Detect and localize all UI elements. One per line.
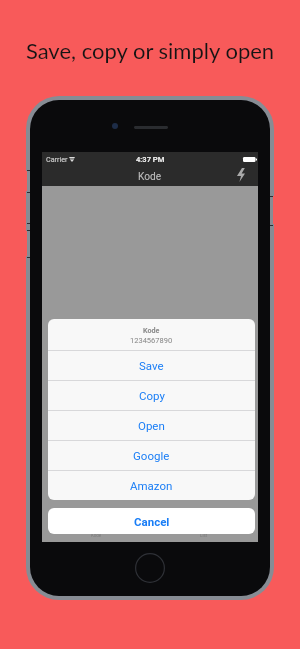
staticText: Save, copy or simply open <box>0 37 300 63</box>
staticText: Amazon <box>130 479 173 492</box>
staticText: Carrier <box>46 155 68 163</box>
staticText: Kode <box>138 171 162 183</box>
staticText: 4:37 PM <box>136 155 165 164</box>
staticText: Kode <box>91 533 102 538</box>
staticText: Save <box>139 359 164 372</box>
staticText: Open <box>138 419 165 432</box>
staticText: Kode <box>143 326 160 334</box>
button[interactable]: Cancel <box>48 508 255 534</box>
staticText: Google <box>133 449 170 462</box>
button[interactable]: Flash <box>232 164 252 186</box>
staticText: Copy <box>139 389 165 402</box>
button[interactable]: Google <box>48 441 255 470</box>
button[interactable]: Save <box>48 351 255 380</box>
button[interactable]: Amazon <box>48 471 255 500</box>
staticText: Cancel <box>134 515 170 528</box>
button[interactable]: Open <box>48 411 255 440</box>
staticText: List <box>200 533 208 538</box>
button[interactable]: Copy <box>48 381 255 410</box>
staticText: 1234567890 <box>130 336 173 345</box>
